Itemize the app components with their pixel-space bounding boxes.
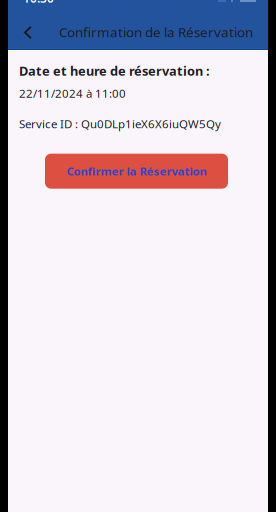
staticText: 10:30 [23, 0, 54, 6]
staticText: Confirmation de la Réservation [59, 23, 253, 41]
staticText: 22/11/2024 à 11:00 [19, 85, 126, 101]
button[interactable]: Back [8, 6, 42, 48]
button[interactable]: Confirmer la Réservation [45, 154, 228, 189]
staticText: Date et heure de réservation : [19, 62, 210, 79]
staticText: Confirmer la Réservation [66, 163, 206, 179]
staticText: Service ID : Qu0DLp1ieX6X6iuQW5Qy [19, 116, 221, 132]
